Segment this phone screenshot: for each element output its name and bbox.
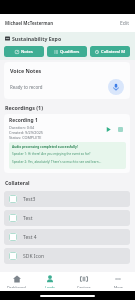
staticText: Speaker 2: Yes, absolutely! There's so m… — [12, 160, 102, 164]
staticText: Ready to record — [10, 84, 43, 90]
button[interactable]: Edit — [120, 20, 129, 27]
staticText: Status: COMPLETE — [9, 135, 42, 140]
button[interactable]: Test 4 — [4, 229, 130, 245]
staticText: Recording 1 — [9, 117, 38, 124]
staticText: Edit — [120, 20, 129, 27]
staticText: Michael McTesterman — [5, 20, 53, 26]
staticText: Created: 9/29/2025 — [9, 130, 44, 135]
staticText: Test3 — [23, 196, 36, 203]
button[interactable]: Stop — [114, 123, 126, 135]
button[interactable]: Dashboard — [0, 272, 33, 291]
staticText: Recordings (1) — [5, 104, 43, 111]
staticText: More — [114, 285, 123, 288]
button[interactable]: More — [101, 272, 135, 291]
button[interactable]: Leads — [33, 272, 67, 291]
staticText: Sustainability Expo — [12, 35, 62, 42]
button[interactable]: Collateral M — [90, 46, 130, 57]
button[interactable]: Play — [102, 123, 114, 135]
staticText: Duration: 0:04 — [9, 125, 35, 130]
staticText: Leads — [45, 285, 55, 288]
staticText: Collateral M — [101, 49, 126, 55]
staticText: Audio processing completed successfully! — [12, 145, 78, 149]
button[interactable]: SDK Icon — [4, 248, 130, 264]
button[interactable]: Test — [4, 210, 130, 226]
staticText: Speaker 1: Hi there! Are you enjoying th… — [12, 152, 91, 156]
button[interactable]: Notes — [4, 46, 44, 57]
staticText: Dashboard — [7, 285, 26, 288]
button[interactable]: Test3 — [4, 191, 130, 207]
staticText: Test 4 — [23, 234, 37, 241]
staticText: SDK Icon — [23, 253, 45, 260]
staticText: Qualifiers — [60, 49, 80, 55]
staticText: Voice Notes — [10, 67, 42, 74]
button[interactable]: Record — [108, 79, 124, 95]
staticText: Test — [23, 215, 33, 222]
staticText: Notes — [21, 49, 33, 55]
button[interactable]: Qualifiers — [47, 46, 87, 57]
staticText: Collateral — [5, 180, 30, 187]
button[interactable]: Capture — [67, 272, 101, 291]
staticText: Capture — [77, 285, 91, 288]
